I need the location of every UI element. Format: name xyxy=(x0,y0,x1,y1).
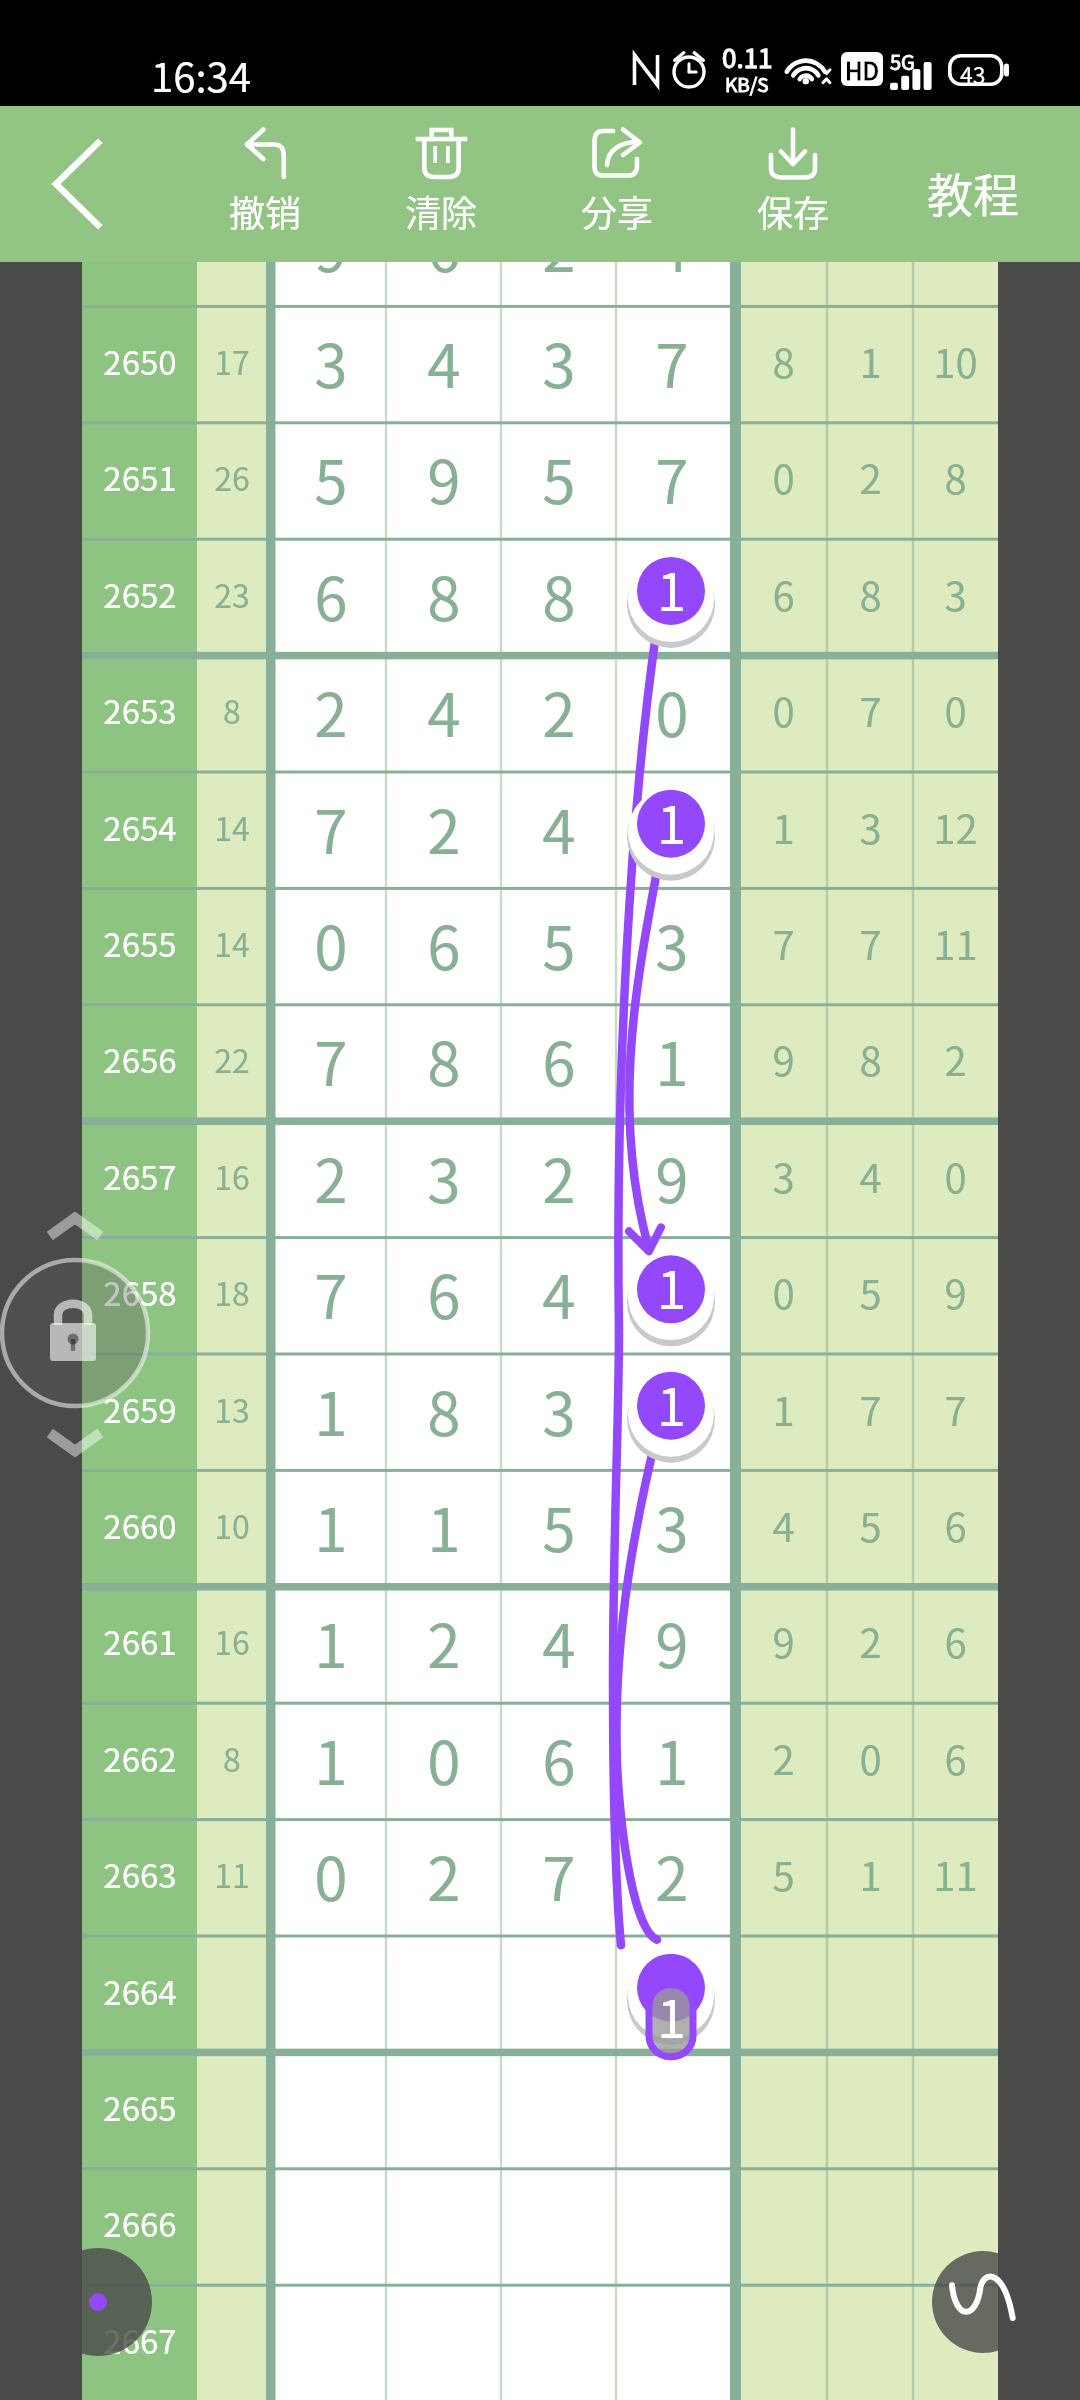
staticText: 8 xyxy=(542,551,576,638)
staticText: 1 xyxy=(859,332,882,390)
staticText: 1 xyxy=(772,1380,795,1438)
staticText: 6 xyxy=(772,565,795,623)
staticText: 0 xyxy=(859,1729,882,1787)
staticText: 1 xyxy=(314,1366,348,1453)
staticText: 4 xyxy=(427,318,461,405)
staticText: 6 xyxy=(427,900,461,987)
staticText: 9 xyxy=(944,1263,967,1321)
staticText: 1 xyxy=(314,1715,348,1802)
staticText: 4 xyxy=(542,1249,576,1336)
staticText: 2651 xyxy=(103,453,177,501)
staticText: 3 xyxy=(944,565,967,623)
staticText: 3 xyxy=(655,1482,689,1569)
staticText: 2664 xyxy=(103,1967,177,2015)
staticText: 2 xyxy=(542,1133,576,1220)
staticText: 2665 xyxy=(103,2083,177,2131)
staticText: 8 xyxy=(223,1735,241,1781)
staticText: 11 xyxy=(933,914,978,972)
button[interactable]: Scroll down xyxy=(49,1430,101,1456)
staticText: 43 xyxy=(960,57,986,90)
staticText: 0 xyxy=(427,1715,461,1802)
staticText: 5G xyxy=(890,47,915,76)
staticText: 2661 xyxy=(103,1617,177,1665)
staticText: 2 xyxy=(542,262,576,289)
button[interactable]: 撤销 xyxy=(187,106,343,262)
staticText: 2 xyxy=(859,448,882,506)
staticText: 9 xyxy=(314,262,348,289)
staticText: 1 xyxy=(772,798,795,856)
staticText: 16:34 xyxy=(151,46,251,104)
staticText: 2666 xyxy=(103,2199,177,2247)
staticText: 6 xyxy=(944,1729,967,1787)
button[interactable]: Pen colour xyxy=(44,2248,152,2356)
staticText: 2656 xyxy=(103,1035,177,1083)
staticText: 2658 xyxy=(103,1268,177,1316)
staticText: 2 xyxy=(314,1133,348,1220)
staticText: 18 xyxy=(214,1269,250,1315)
staticText: 8 xyxy=(427,1366,461,1453)
button[interactable]: 教程 xyxy=(883,106,1063,262)
staticText: 撤销 xyxy=(229,185,302,237)
staticText: 7 xyxy=(542,1831,576,1918)
staticText: 1 xyxy=(657,784,686,859)
staticText: 1 xyxy=(657,551,686,626)
button[interactable]: Curve tool xyxy=(932,2251,998,2353)
button[interactable]: 分享 xyxy=(539,106,695,262)
staticText: 2657 xyxy=(103,1152,177,1200)
staticText: 7 xyxy=(655,318,689,405)
staticText: 1 xyxy=(657,1249,686,1324)
staticText: 2 xyxy=(859,1612,882,1670)
staticText: 2659 xyxy=(103,1385,177,1433)
button[interactable]: 保存 xyxy=(715,106,871,262)
staticText: 2655 xyxy=(103,919,177,967)
staticText: 16 xyxy=(214,1618,250,1664)
staticText: 9 xyxy=(655,1133,689,1220)
staticText: 1 xyxy=(314,1598,348,1685)
staticText: 26 xyxy=(214,454,250,500)
staticText: 2650 xyxy=(103,337,177,385)
staticText: 1 xyxy=(655,1715,689,1802)
staticText: 1 xyxy=(314,1482,348,1569)
staticText: 7 xyxy=(859,681,882,739)
staticText: 2 xyxy=(542,667,576,754)
staticText: 6 xyxy=(944,1612,967,1670)
staticText: 11 xyxy=(214,1851,250,1897)
staticText: 0 xyxy=(772,448,795,506)
button[interactable]: Scroll up xyxy=(49,1212,101,1238)
staticText: 1 xyxy=(859,1845,882,1903)
staticText: 7 xyxy=(859,914,882,972)
staticText: 2 xyxy=(427,1831,461,1918)
staticText: 2663 xyxy=(103,1850,177,1898)
staticText: 8 xyxy=(223,687,241,733)
staticText: 3 xyxy=(859,798,882,856)
staticText: 22 xyxy=(214,1036,250,1082)
staticText: 0 xyxy=(944,681,967,739)
staticText: 2662 xyxy=(103,1734,177,1782)
button[interactable]: Back xyxy=(0,106,160,262)
staticText: 2 xyxy=(314,667,348,754)
staticText: 0 xyxy=(655,667,689,754)
staticText: 4 xyxy=(542,784,576,871)
staticText: 2660 xyxy=(103,1501,177,1549)
staticText: 8 xyxy=(427,1016,461,1103)
staticText: 7 xyxy=(314,1249,348,1336)
staticText: 清除 xyxy=(405,185,478,237)
staticText: 2654 xyxy=(103,803,177,851)
staticText: 8 xyxy=(427,551,461,638)
staticText: 6 xyxy=(314,551,348,638)
staticText: 11 xyxy=(933,1845,978,1903)
staticText: 5 xyxy=(314,434,348,521)
staticText: 7 xyxy=(314,784,348,871)
staticText: 7 xyxy=(655,434,689,521)
staticText: 6 xyxy=(944,1496,967,1554)
staticText: 2 xyxy=(772,1729,795,1787)
staticText: 2 xyxy=(944,1030,967,1088)
staticText: 4 xyxy=(772,1496,795,1554)
button[interactable]: 清除 xyxy=(363,106,519,262)
staticText: 5 xyxy=(859,1496,882,1554)
button[interactable]: Lock xyxy=(0,1258,150,1408)
staticText: 7 xyxy=(314,1016,348,1103)
staticText: 5 xyxy=(772,1845,795,1903)
staticText: 6 xyxy=(542,1016,576,1103)
